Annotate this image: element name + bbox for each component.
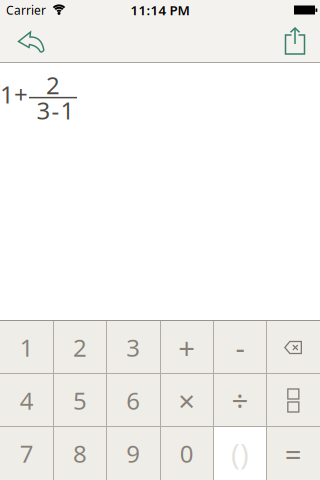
- staticText: 0: [180, 438, 194, 469]
- staticText: 3-1: [36, 94, 74, 126]
- button[interactable]: [285, 27, 320, 54]
- staticText: 6: [126, 385, 140, 416]
- button[interactable]: 9: [107, 427, 160, 480]
- button[interactable]: 3: [107, 321, 160, 374]
- staticText: 1: [20, 332, 34, 363]
- staticText: ×: [178, 381, 195, 420]
- staticText: 3: [126, 332, 140, 363]
- button[interactable]: =: [267, 427, 320, 480]
- button[interactable]: 8: [53, 427, 107, 480]
- button[interactable]: 0: [160, 427, 213, 480]
- button[interactable]: 2: [53, 321, 107, 374]
- button[interactable]: [267, 374, 320, 427]
- staticText: 7: [20, 438, 34, 469]
- button[interactable]: 4: [0, 374, 53, 427]
- button[interactable]: ÷: [213, 374, 267, 427]
- staticText: 9: [126, 438, 140, 469]
- button[interactable]: ×: [160, 374, 213, 427]
- staticText: 4: [20, 385, 34, 416]
- staticText: -: [235, 328, 244, 367]
- staticText: ÷: [231, 381, 248, 420]
- staticText: Carrier: [6, 2, 46, 18]
- staticText: 2: [73, 332, 87, 363]
- button[interactable]: +: [160, 321, 213, 374]
- button[interactable]: [267, 321, 320, 374]
- button[interactable]: -: [213, 321, 267, 374]
- button[interactable]: [0, 27, 46, 55]
- staticText: 2: [46, 69, 60, 101]
- staticText: 5: [73, 385, 87, 416]
- button[interactable]: 5: [53, 374, 107, 427]
- staticText: (): [231, 434, 249, 473]
- staticText: 11:14 PM: [130, 1, 189, 19]
- button[interactable]: 1: [0, 321, 53, 374]
- staticText: 8: [73, 438, 87, 469]
- button[interactable]: 7: [0, 427, 53, 480]
- staticText: 1+: [0, 78, 28, 110]
- staticText: +: [178, 328, 195, 367]
- button[interactable]: 6: [107, 374, 160, 427]
- button[interactable]: (): [213, 427, 267, 480]
- staticText: =: [285, 434, 302, 473]
